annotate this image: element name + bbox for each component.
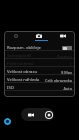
button[interactable]: Photo settings (27, 31, 51, 41)
staticText: 1 (69, 62, 72, 67)
staticText: Počet snímků (7, 61, 34, 67)
button[interactable]: Camera mode switch (21, 108, 54, 121)
staticText: 8 Mpx (61, 70, 72, 75)
button[interactable]: Shutter (45, 111, 53, 119)
button[interactable]: ISO (4, 83, 75, 91)
staticText: Celá obrazovka (45, 78, 72, 83)
button[interactable]: Gallery (4, 118, 11, 125)
staticText: Auto (63, 86, 72, 91)
button[interactable]: Velikost náhledu (4, 75, 75, 83)
button[interactable]: General settings (4, 31, 27, 41)
button[interactable]: Video settings (51, 31, 75, 41)
button[interactable]: Rozpozn. obličeje (4, 43, 75, 51)
button[interactable]: Velikost obrazu (4, 67, 75, 75)
staticText: ISO (7, 85, 14, 91)
staticText: Velikost náhledu (7, 77, 40, 83)
staticText: Velikost obrazu (7, 69, 37, 75)
staticText: Rozpozn. obličeje (7, 45, 41, 51)
staticText: Vypnuto (57, 54, 72, 59)
staticText: Samospoušť (7, 53, 32, 59)
button[interactable]: Samospoušť (4, 51, 75, 59)
button[interactable]: Počet snímků (4, 59, 75, 67)
